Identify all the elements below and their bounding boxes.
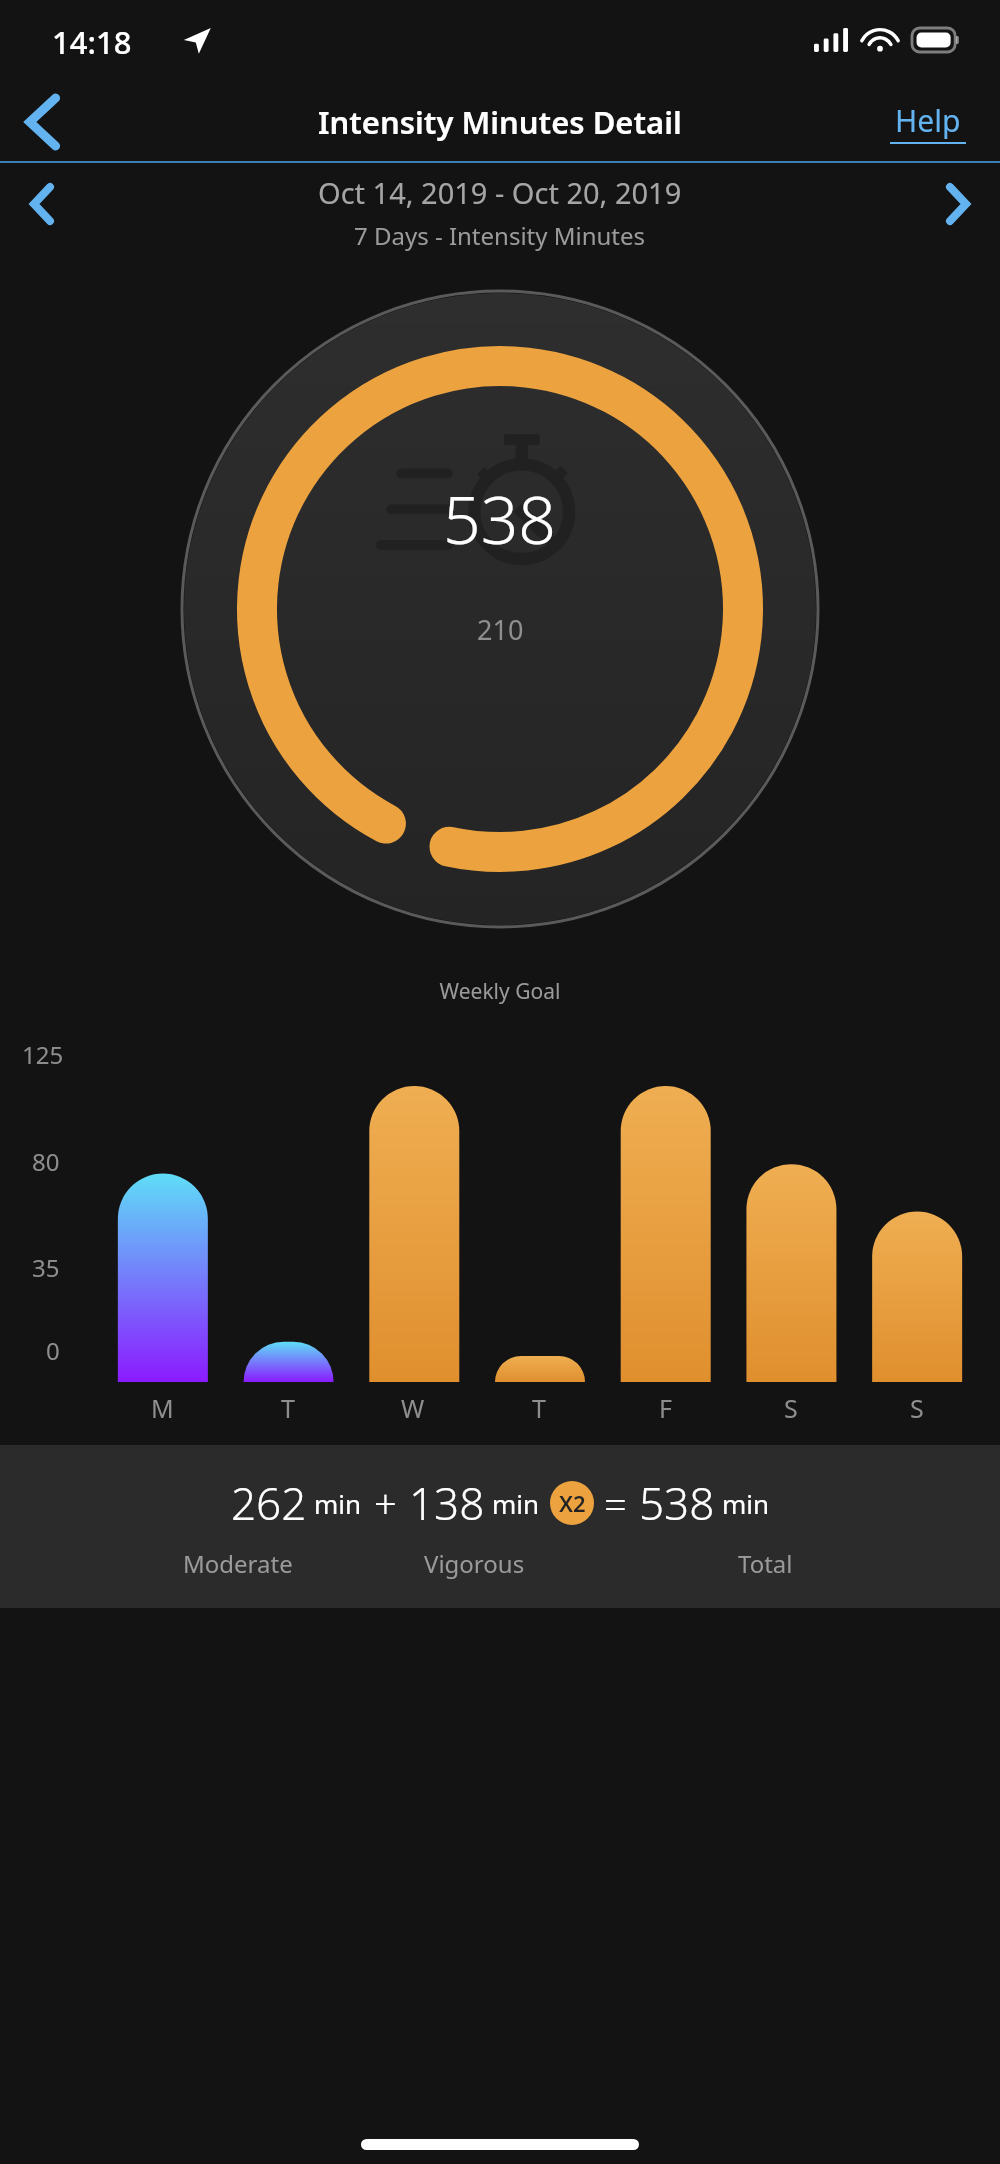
button[interactable]: Next week [916, 162, 1000, 246]
staticText: W [401, 1391, 425, 1425]
staticText: 538 [443, 473, 557, 563]
staticText: 262 [231, 1473, 307, 1533]
staticText: M [151, 1391, 174, 1425]
staticText: Moderate [183, 1547, 293, 1580]
staticText: 538 [639, 1473, 715, 1533]
button[interactable]: Help [890, 100, 966, 144]
staticText: X2 [559, 1488, 586, 1518]
staticText: 35 [32, 1251, 60, 1284]
staticText: min [722, 1486, 770, 1521]
staticText: min [492, 1486, 540, 1521]
staticText: 0 [46, 1334, 60, 1367]
staticText: 210 [477, 611, 524, 648]
button[interactable]: 262 [0, 1445, 1000, 1608]
staticText: F [659, 1391, 672, 1425]
staticText: S [784, 1391, 798, 1425]
staticText: = [604, 1476, 627, 1530]
staticText: 80 [32, 1145, 60, 1178]
staticText: T [281, 1391, 295, 1425]
staticText: Help [895, 100, 961, 141]
staticText: S [910, 1391, 924, 1425]
button[interactable]: Previous week [0, 162, 84, 246]
staticText: T [532, 1391, 546, 1425]
staticText: min [314, 1486, 362, 1521]
staticText: Weekly Goal [0, 977, 1000, 1006]
button[interactable]: Back [0, 80, 86, 163]
staticText: 7 Days - Intensity Minutes [354, 219, 646, 252]
staticText: Total [738, 1547, 793, 1580]
staticText: + [374, 1476, 397, 1530]
staticText: Intensity Minutes Detail [318, 101, 682, 143]
staticText: 14:18 [52, 21, 132, 63]
staticText: 138 [409, 1473, 485, 1533]
staticText: Oct 14, 2019 - Oct 20, 2019 [318, 173, 682, 212]
staticText: Vigorous [424, 1547, 525, 1580]
staticText: 125 [22, 1038, 64, 1071]
